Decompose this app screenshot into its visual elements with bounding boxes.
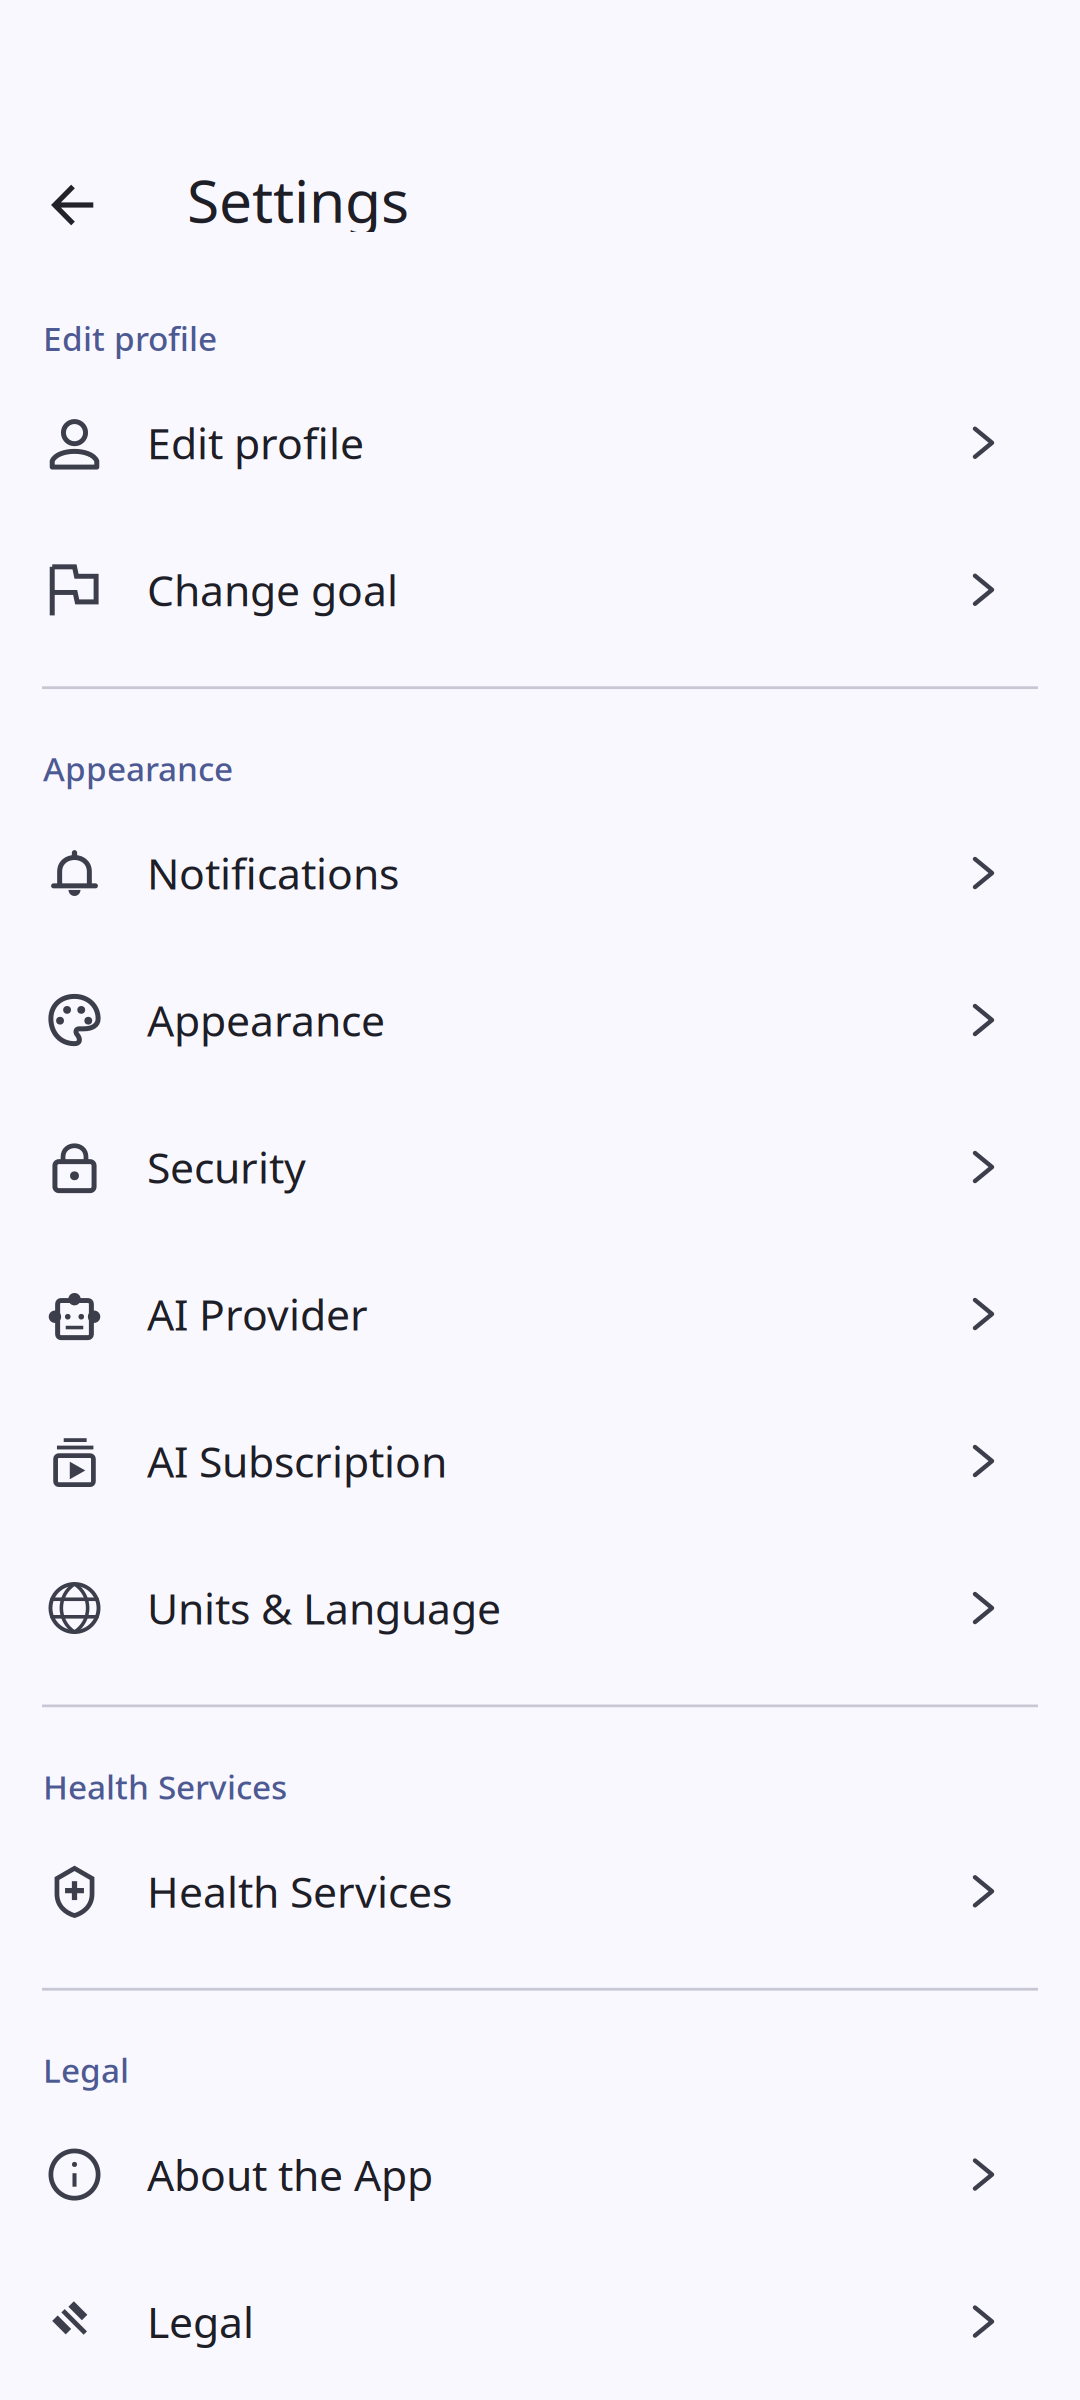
staticText: Appearance <box>147 992 385 1048</box>
button[interactable]: Legal <box>0 2248 1080 2395</box>
button[interactable]: AI Subscription <box>0 1387 1080 1534</box>
staticText: Notifications <box>147 845 399 901</box>
staticText: Legal <box>43 2048 129 2092</box>
button[interactable]: About the App <box>0 2101 1080 2248</box>
button[interactable]: Edit profile <box>0 369 1080 516</box>
button[interactable]: Change goal <box>0 516 1080 663</box>
button[interactable]: Health Services <box>0 1818 1080 1965</box>
staticText: About the App <box>147 2146 433 2203</box>
staticText: Appearance <box>43 746 233 791</box>
staticText: Settings <box>187 161 409 239</box>
staticText: Legal <box>147 2293 254 2350</box>
staticText: Health Services <box>43 1764 287 1809</box>
button[interactable]: Appearance <box>0 946 1080 1093</box>
staticText: AI Subscription <box>147 1433 447 1489</box>
staticText: Units & Language <box>147 1580 501 1636</box>
staticText: Security <box>147 1139 306 1195</box>
staticText: Health Services <box>147 1863 452 1920</box>
staticText: Change goal <box>147 561 398 618</box>
button[interactable]: Back <box>40 168 104 232</box>
staticText: AI Provider <box>147 1286 368 1342</box>
button[interactable]: AI Provider <box>0 1240 1080 1387</box>
staticText: Edit profile <box>147 414 364 471</box>
button[interactable]: Units & Language <box>0 1534 1080 1681</box>
button[interactable]: Security <box>0 1093 1080 1240</box>
button[interactable]: Notifications <box>0 799 1080 946</box>
staticText: Edit profile <box>43 316 217 360</box>
